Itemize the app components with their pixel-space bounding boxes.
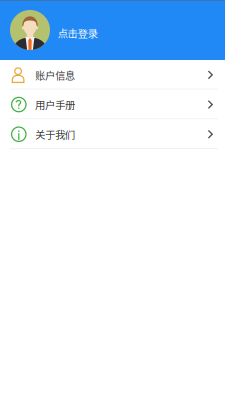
staticText: 账户信息 (35, 67, 75, 82)
staticText: 关于我们 (35, 127, 75, 142)
staticText: 用户手册 (35, 97, 75, 112)
button[interactable]: 点击登录 (0, 0, 225, 60)
button[interactable]: 用户手册 (0, 90, 225, 119)
button[interactable]: 账户信息 (0, 60, 225, 90)
staticText: 点击登录 (57, 25, 97, 41)
button[interactable]: 关于我们 (0, 119, 225, 149)
